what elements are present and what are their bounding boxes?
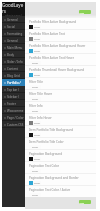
button[interactable]: General: [2, 16, 25, 23]
button[interactable]: #ffffff: [33, 133, 41, 137]
staticText: General: [7, 18, 18, 22]
button[interactable]: General Color: [2, 37, 25, 44]
staticText: Footer: [7, 102, 16, 106]
button[interactable]: Sidebar / Widget: [2, 93, 25, 100]
staticText: Slider / Info: [7, 60, 23, 64]
button[interactable]: #ffffff: [33, 181, 41, 185]
staticText: Save Changes: [79, 201, 91, 204]
button[interactable]: Blog Grid: [2, 72, 25, 79]
staticText: Portfolio Filter Active Background Hover: [29, 44, 86, 48]
button[interactable]: Page / Color: [2, 114, 25, 121]
staticText: #ffffff: [34, 38, 40, 41]
staticText: Sidebar / Widget: [7, 95, 24, 99]
staticText: #ffffff: [34, 134, 40, 137]
staticText: #ffffff: [34, 50, 40, 53]
button[interactable]: Body: [2, 51, 25, 58]
button[interactable]: Social Network: [2, 23, 25, 30]
staticText: Portfolio Filter Active Text: [29, 32, 65, 36]
staticText: #ffffff: [32, 62, 38, 65]
staticText: #ffffff: [34, 26, 40, 29]
button[interactable]: #ffffff: [29, 61, 41, 65]
button[interactable]: #ffffff: [33, 25, 41, 29]
button[interactable]: Custom CSS: [2, 121, 25, 128]
staticText: Main Menu: [7, 46, 23, 50]
button[interactable]: #ffffff: [29, 85, 41, 89]
staticText: Item Portfolio Title Color: [29, 140, 64, 144]
staticText: Woocommerce: [7, 109, 24, 113]
staticText: Save Changes: [79, 11, 91, 14]
button[interactable]: #ffffff: [33, 73, 41, 77]
staticText: Portfolio Thumbnail Hover Background: [29, 68, 85, 72]
button[interactable]: #ffffff: [33, 37, 41, 41]
staticText: #ffffff: [34, 158, 40, 161]
button[interactable]: #ffffff: [33, 121, 41, 125]
staticText: Page / Color: [7, 116, 24, 120]
button[interactable]: Save Changes: [79, 10, 91, 14]
button[interactable]: #ffffff: [29, 109, 41, 113]
staticText: #ffffff: [32, 170, 38, 173]
staticText: Pagination Text Color / Active: [29, 188, 71, 192]
button[interactable]: #ffffff: [29, 169, 41, 173]
staticText: #ffffff: [32, 194, 38, 197]
button[interactable]: #ffffff: [29, 97, 41, 101]
button[interactable]: Top bar / Others: [2, 86, 25, 93]
button[interactable]: #ffffff: [33, 49, 41, 53]
staticText: Custom CSS: [7, 123, 24, 127]
staticText: #ffffff: [32, 98, 38, 101]
staticText: Formatting: [7, 32, 23, 36]
staticText: Content Elements: [7, 67, 24, 71]
staticText: Social Network: [7, 25, 24, 29]
staticText: Filter Info: [29, 104, 43, 108]
staticText: Pagination Background: [29, 152, 63, 156]
button[interactable]: Main Menu: [2, 44, 25, 51]
staticText: Portfolio Filter Active Background: [29, 20, 77, 24]
staticText: Filter Title: [29, 80, 43, 84]
staticText: #ffffff: [34, 182, 40, 185]
staticText: Blog Grid: [7, 74, 20, 78]
staticText: Body: [7, 53, 14, 57]
staticText: Pagination Text Color: [29, 164, 60, 168]
button[interactable]: #ffffff: [29, 145, 41, 149]
staticText: #ffffff: [34, 122, 40, 125]
button[interactable]: Woocommerce: [2, 107, 25, 114]
staticText: Filter Info Hover: [29, 116, 52, 120]
staticText: Pagination Background and Border: [29, 176, 79, 180]
staticText: GoodLayers: [2, 2, 25, 14]
staticText: Portfolio / Pagination: [7, 81, 24, 85]
staticText: Top bar / Others: [7, 88, 24, 92]
button[interactable]: #ffffff: [29, 193, 41, 197]
staticText: Filter Title Hover: [29, 92, 53, 96]
staticText: admin panel: [5, 14, 22, 16]
button[interactable]: Content Elements: [2, 65, 25, 72]
button[interactable]: #ffffff: [33, 157, 41, 161]
staticText: #ffffff: [32, 110, 38, 113]
button[interactable]: Footer: [2, 100, 25, 107]
staticText: General Color: [7, 39, 24, 43]
staticText: #ffffff: [34, 74, 40, 77]
staticText: Item Portfolio Title Background: [29, 128, 74, 132]
staticText: #ffffff: [32, 146, 38, 149]
staticText: Portfolio Filter Active Text Hover: [29, 56, 75, 60]
button[interactable]: Formatting: [2, 30, 25, 37]
button[interactable]: Portfolio / Pagination: [2, 79, 25, 86]
button[interactable]: Slider / Info: [2, 58, 25, 65]
button[interactable]: Save Changes: [79, 200, 91, 204]
staticText: #ffffff: [32, 86, 38, 89]
